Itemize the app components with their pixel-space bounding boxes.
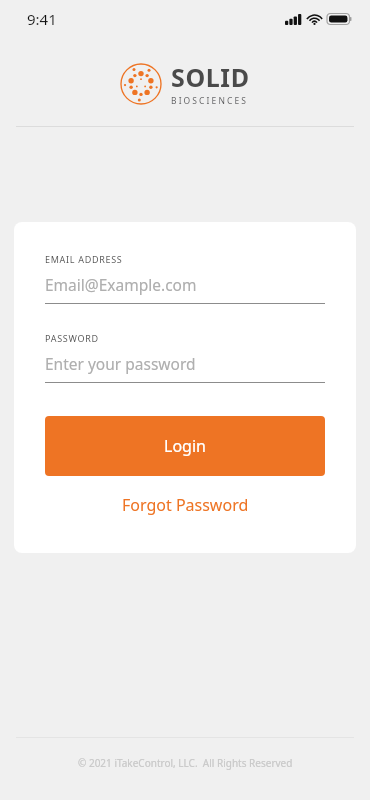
staticText: PASSWORD <box>45 332 99 344</box>
staticText: 9:41 <box>27 9 57 29</box>
button[interactable]: Login <box>45 416 325 476</box>
button[interactable]: PASSWORD <box>45 332 325 383</box>
staticText: BIOSCIENCES <box>171 95 249 107</box>
button[interactable]: Forgot Password <box>45 488 325 522</box>
staticText: Login <box>164 435 206 457</box>
staticText: © 2021 iTakeControl, LLC. All Rights Res… <box>78 756 293 770</box>
staticText: EMAIL ADDRESS <box>45 253 123 265</box>
staticText: Enter your password <box>45 353 196 374</box>
button[interactable]: EMAIL ADDRESS <box>45 253 325 304</box>
other: Solid Biosciences logo <box>120 63 162 105</box>
staticText: SOLID <box>171 60 250 94</box>
staticText: Email@Example.com <box>45 274 197 295</box>
staticText: Forgot Password <box>122 494 249 516</box>
